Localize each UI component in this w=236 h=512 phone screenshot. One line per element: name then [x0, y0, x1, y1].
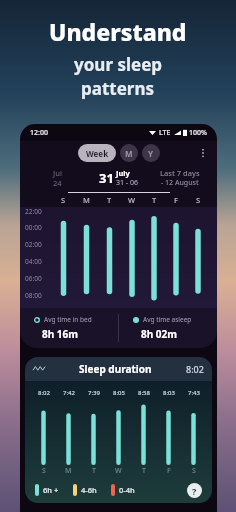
- button[interactable]: Last 7 days: [152, 168, 208, 188]
- staticText: 7:43: [188, 389, 200, 397]
- staticText: 12:00: [30, 128, 48, 138]
- staticText: 00:00: [25, 223, 42, 232]
- staticText: M: [83, 195, 90, 205]
- staticText: 22:00: [25, 207, 42, 216]
- staticText: 8:58: [138, 389, 150, 397]
- button[interactable]: 31: [85, 168, 152, 188]
- button[interactable]: Y: [142, 144, 160, 162]
- staticText: T: [107, 195, 112, 205]
- staticText: F: [174, 195, 178, 205]
- button[interactable]: Help: [187, 483, 202, 498]
- staticText: 4-6h: [81, 485, 97, 495]
- staticText: Week: [86, 148, 109, 159]
- staticText: M: [65, 466, 72, 476]
- staticText: S: [192, 466, 196, 476]
- staticText: W: [128, 195, 136, 205]
- staticText: Understand: [49, 16, 187, 47]
- staticText: S: [42, 466, 46, 476]
- button[interactable]: Avg time asleep: [119, 308, 217, 348]
- staticText: Avg time in bed: [44, 315, 92, 324]
- staticText: 7:42: [63, 389, 75, 397]
- staticText: - 12 August: [161, 178, 199, 188]
- staticText: 06:00: [25, 274, 42, 283]
- button[interactable]: 0-4h: [111, 484, 135, 496]
- staticText: July: [116, 168, 130, 178]
- staticText: 31: [99, 169, 114, 187]
- staticText: W: [115, 466, 122, 476]
- staticText: your sleep: [74, 53, 163, 76]
- button[interactable]: 6h +: [35, 484, 59, 496]
- button[interactable]: Week: [78, 144, 116, 162]
- staticText: 04:00: [25, 257, 42, 266]
- staticText: 08:00: [25, 291, 42, 300]
- button[interactable]: M: [120, 144, 138, 162]
- button[interactable]: More options: [196, 146, 210, 160]
- staticText: F: [167, 466, 171, 476]
- button[interactable]: 4-6h: [73, 484, 97, 496]
- button[interactable]: Avg time in bed: [20, 308, 118, 348]
- staticText: ?: [192, 485, 197, 497]
- staticText: 31 - 06: [116, 178, 138, 188]
- staticText: T: [152, 195, 157, 205]
- staticText: 24: [53, 178, 62, 188]
- staticText: patterns: [81, 77, 155, 100]
- staticText: LTE: [159, 128, 171, 138]
- staticText: 0-4h: [119, 485, 135, 495]
- staticText: 7:39: [88, 389, 100, 397]
- staticText: Jul: [53, 168, 62, 178]
- button[interactable]: Sleep duration: [25, 357, 212, 381]
- staticText: T: [92, 466, 96, 476]
- staticText: S: [61, 195, 66, 205]
- staticText: Last 7 days: [160, 168, 200, 178]
- staticText: 8:03: [163, 389, 175, 397]
- staticText: 8h 02m: [141, 327, 178, 341]
- staticText: 8:02: [38, 389, 50, 397]
- staticText: 8:05: [113, 389, 125, 397]
- staticText: Sleep duration: [79, 362, 152, 376]
- staticText: M: [125, 148, 133, 159]
- staticText: S: [196, 195, 201, 205]
- staticText: 8h 16m: [42, 327, 79, 341]
- staticText: 02:00: [25, 240, 42, 249]
- staticText: 8:02: [186, 363, 204, 375]
- button[interactable]: Jul: [29, 168, 85, 188]
- staticText: Y: [148, 148, 154, 159]
- staticText: Avg time asleep: [143, 315, 192, 324]
- staticText: 6h +: [43, 485, 59, 495]
- staticText: T: [142, 466, 146, 476]
- staticText: 100%: [189, 128, 207, 138]
